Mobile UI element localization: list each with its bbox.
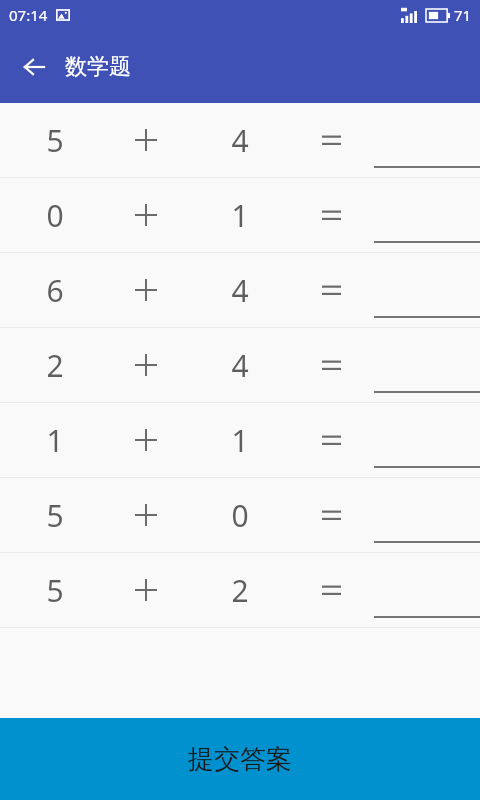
staticText: 5 [46, 120, 64, 161]
staticText: 71 [454, 5, 472, 25]
staticText: 1 [231, 420, 249, 461]
button[interactable]: 0 [0, 178, 480, 252]
staticText: 提交答案 [188, 743, 292, 776]
staticText: 5 [46, 570, 64, 611]
staticText: 1 [46, 420, 64, 461]
staticText: 4 [231, 345, 249, 386]
button[interactable]: 6 [0, 253, 480, 327]
button[interactable]: Back [12, 45, 56, 89]
staticText: 数学题 [65, 53, 131, 81]
staticText: 4 [231, 270, 249, 311]
staticText: 0 [231, 495, 249, 536]
button[interactable]: 5 [0, 478, 480, 552]
staticText: 4 [231, 120, 249, 161]
staticText: 2 [231, 570, 249, 611]
staticText: 1 [231, 195, 249, 236]
staticText: 2 [46, 345, 64, 386]
button[interactable]: 2 [0, 328, 480, 402]
staticText: 5 [46, 495, 64, 536]
staticText: 07:14 [9, 5, 48, 25]
button[interactable]: 5 [0, 553, 480, 627]
button[interactable]: 提交答案 [0, 718, 480, 800]
staticText: 6 [46, 270, 64, 311]
button[interactable]: 5 [0, 103, 480, 177]
staticText: 0 [46, 195, 64, 236]
button[interactable]: 1 [0, 403, 480, 477]
